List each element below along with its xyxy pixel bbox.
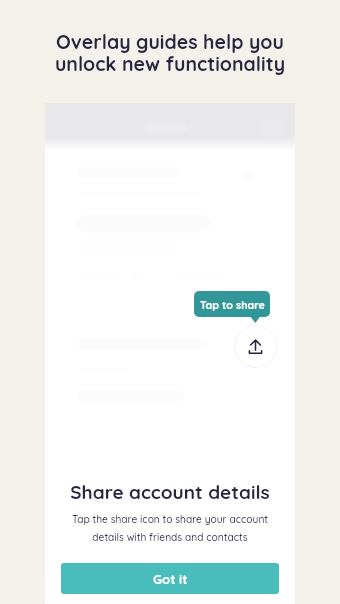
staticText: Share account details [61, 480, 279, 504]
button[interactable]: Tap to share [194, 291, 270, 323]
staticText: Got it [153, 571, 188, 587]
staticText: Tap the share icon to share your account… [61, 513, 279, 543]
button[interactable]: Share [234, 325, 277, 368]
staticText: Overlay guides help you unlock new funct… [0, 29, 340, 75]
staticText: Tap to share [200, 298, 265, 311]
button[interactable]: Got it [61, 563, 279, 594]
